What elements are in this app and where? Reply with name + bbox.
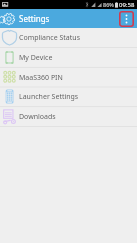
staticText: MaaS360 PIN <box>19 73 63 83</box>
staticText: Downloads <box>19 112 56 122</box>
button[interactable]: My Device <box>0 48 137 67</box>
staticText: Compliance Status <box>19 33 81 43</box>
button[interactable]: Compliance Status <box>0 28 137 47</box>
staticText: Settings <box>19 13 50 24</box>
button[interactable]: More options <box>119 11 134 27</box>
button[interactable]: MaaS360 PIN <box>0 68 137 87</box>
staticText: Launcher Settings <box>19 92 79 102</box>
staticText: 09:58 <box>119 1 135 9</box>
button[interactable]: Launcher Settings <box>0 87 137 106</box>
button[interactable]: Downloads <box>0 107 137 126</box>
staticText: My Device <box>19 53 53 63</box>
staticText: 86% <box>103 1 114 8</box>
